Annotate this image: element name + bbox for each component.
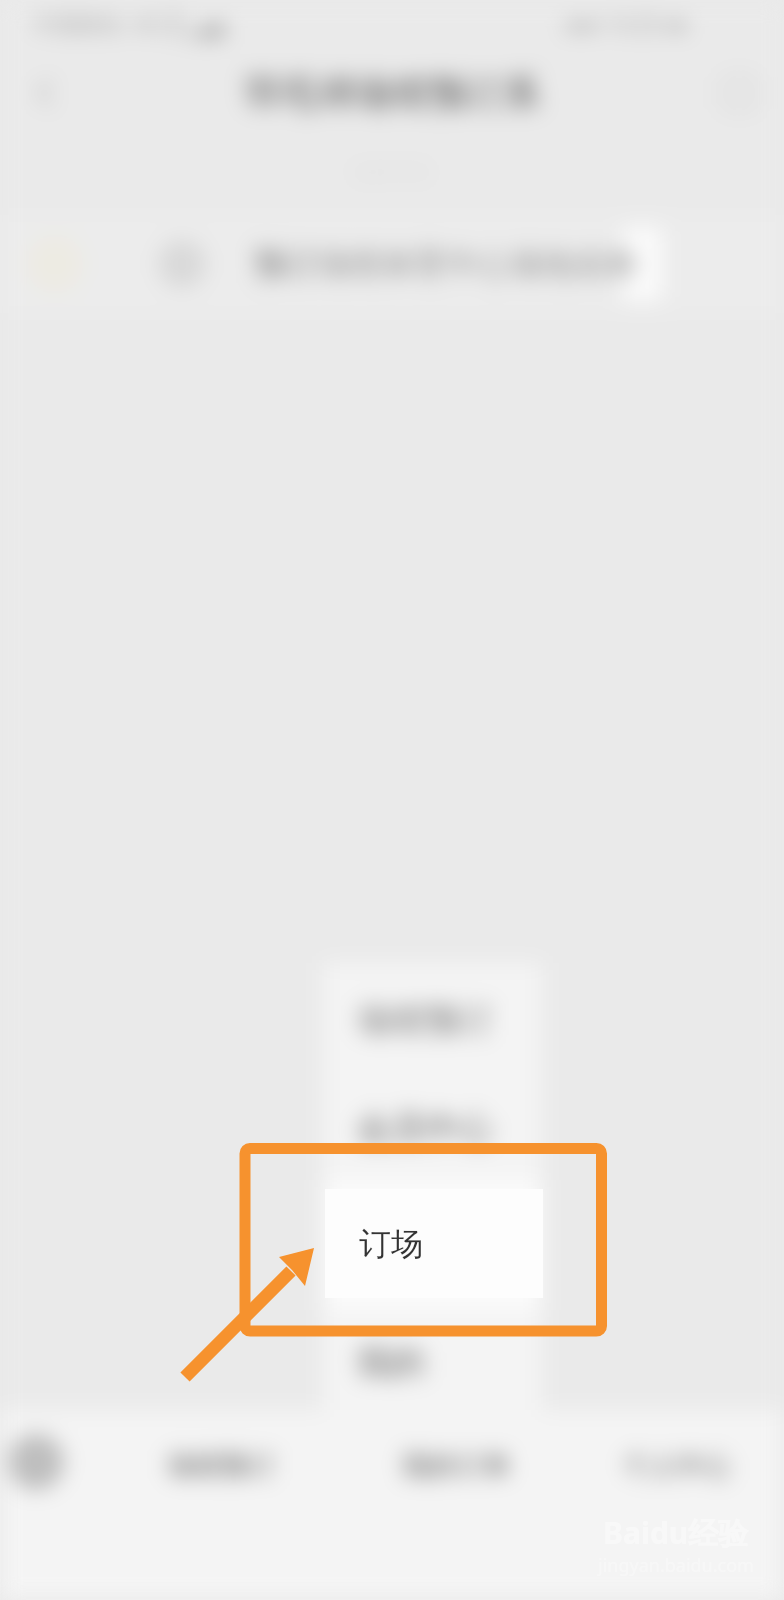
button[interactable]: 订场 [325,1189,543,1298]
button[interactable]: Open [0,215,784,313]
staticText: 预订 [254,244,318,284]
staticText: 订场 [357,1224,425,1267]
button[interactable]: Home [8,1434,64,1490]
button[interactable]: 会员中心 [323,1077,542,1180]
button[interactable]: 我的 [323,1310,542,1415]
staticText: 场馆体育中心场地名称 [318,244,638,284]
staticText: 我的 [357,1341,425,1384]
button[interactable]: 个人中心 [597,1442,757,1490]
staticText: 中国移动 4G ▎▂▄ [34,8,225,38]
button[interactable]: 我的订单 [376,1442,536,1490]
staticText: 场馆预订 [167,1449,275,1483]
staticText: 订场 [359,1224,423,1264]
button[interactable]: 场馆预订 [141,1442,301,1490]
button[interactable]: 场馆预订 [323,963,542,1077]
staticText: 会员中心 [357,1107,493,1150]
staticText: 羽毛球场馆预订系 [244,70,540,116]
staticText: 个人中心 [623,1449,731,1483]
staticText: 场馆预订 [357,999,493,1042]
staticText: 我的订单 [402,1449,510,1483]
button[interactable]: 订场 [323,1180,542,1310]
button[interactable]: Open [622,227,662,301]
